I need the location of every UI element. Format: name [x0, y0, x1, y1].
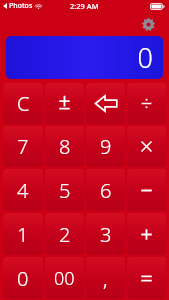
- button[interactable]: Plus minus: [45, 83, 84, 124]
- button[interactable]: Multiply: [127, 126, 166, 167]
- button[interactable]: 00: [45, 257, 84, 299]
- staticText: 0: [137, 39, 153, 76]
- staticText: 00: [54, 266, 75, 291]
- button[interactable]: Plus: [127, 213, 166, 255]
- button[interactable]: 3: [86, 213, 125, 255]
- staticText: C: [17, 90, 30, 117]
- button[interactable]: C: [3, 83, 43, 124]
- button[interactable]: 4: [3, 169, 43, 211]
- button[interactable]: 1: [3, 213, 43, 255]
- staticText: Photos: [9, 1, 33, 11]
- staticText: 0: [17, 265, 29, 292]
- staticText: 2:29 AM: [70, 1, 99, 11]
- button[interactable]: 7: [3, 126, 43, 167]
- staticText: 4: [17, 177, 29, 204]
- button[interactable]: Settings: [140, 16, 157, 33]
- button[interactable]: 5: [45, 169, 84, 211]
- staticText: 6: [100, 177, 112, 204]
- staticText: 3: [100, 221, 112, 248]
- staticText: 1: [17, 221, 29, 248]
- button[interactable]: 6: [86, 169, 125, 211]
- button[interactable]: 9: [86, 126, 125, 167]
- button[interactable]: 0: [3, 257, 43, 299]
- staticText: 2: [59, 221, 71, 248]
- staticText: 8: [59, 133, 71, 160]
- staticText: ,: [103, 265, 108, 292]
- staticText: 7: [17, 133, 29, 160]
- button[interactable]: Divide: [127, 83, 166, 124]
- button[interactable]: Equals: [127, 257, 166, 299]
- staticText: 5: [59, 177, 71, 204]
- button[interactable]: 8: [45, 126, 84, 167]
- staticText: 9: [100, 133, 112, 160]
- button[interactable]: Minus: [127, 169, 166, 211]
- button[interactable]: 2: [45, 213, 84, 255]
- button[interactable]: Backspace: [86, 83, 125, 124]
- button[interactable]: ,: [86, 257, 125, 299]
